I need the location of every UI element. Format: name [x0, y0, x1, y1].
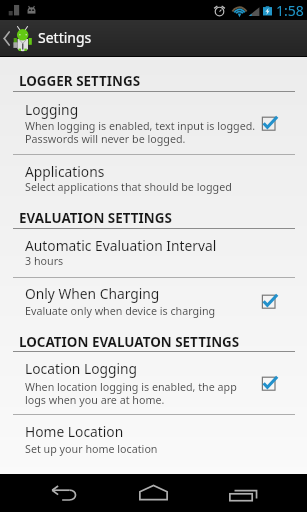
button[interactable]: Back: [20, 474, 107, 512]
button[interactable]: Toggle Only When Charging: [259, 293, 281, 315]
staticText: Set up your home location: [25, 442, 158, 457]
staticText: Settings: [38, 28, 92, 47]
staticText: Evaluate only when device is charging: [25, 304, 216, 319]
staticText: LOGGER SETTINGS: [19, 72, 141, 90]
staticText: logs when you are at home.: [25, 393, 165, 408]
staticText: When logging is enabled, text input is l…: [25, 119, 256, 134]
staticText: Passwords will never be logged.: [25, 132, 186, 147]
staticText: 3 hours: [25, 254, 64, 269]
button[interactable]: Navigate up: [0, 20, 307, 57]
staticText: Applications: [25, 162, 105, 181]
staticText: Only When Charging: [25, 284, 160, 303]
staticText: When location logging is enabled, the ap…: [25, 380, 237, 395]
staticText: 1:58: [276, 1, 304, 20]
staticText: EVALUATION SETTINGS: [19, 209, 172, 227]
staticText: Select applications that should be logge…: [25, 180, 232, 195]
button[interactable]: Toggle Location Logging: [259, 375, 281, 397]
staticText: Automatic Evaluation Interval: [25, 236, 217, 255]
staticText: Home Location: [25, 422, 124, 441]
staticText: Location Logging: [25, 359, 138, 378]
button[interactable]: Toggle Logging: [259, 115, 281, 137]
button[interactable]: Home: [107, 474, 200, 512]
staticText: Logging: [25, 100, 79, 119]
button[interactable]: Recent apps: [200, 474, 287, 512]
staticText: LOCATION EVALUATON SETTINGS: [19, 333, 240, 351]
